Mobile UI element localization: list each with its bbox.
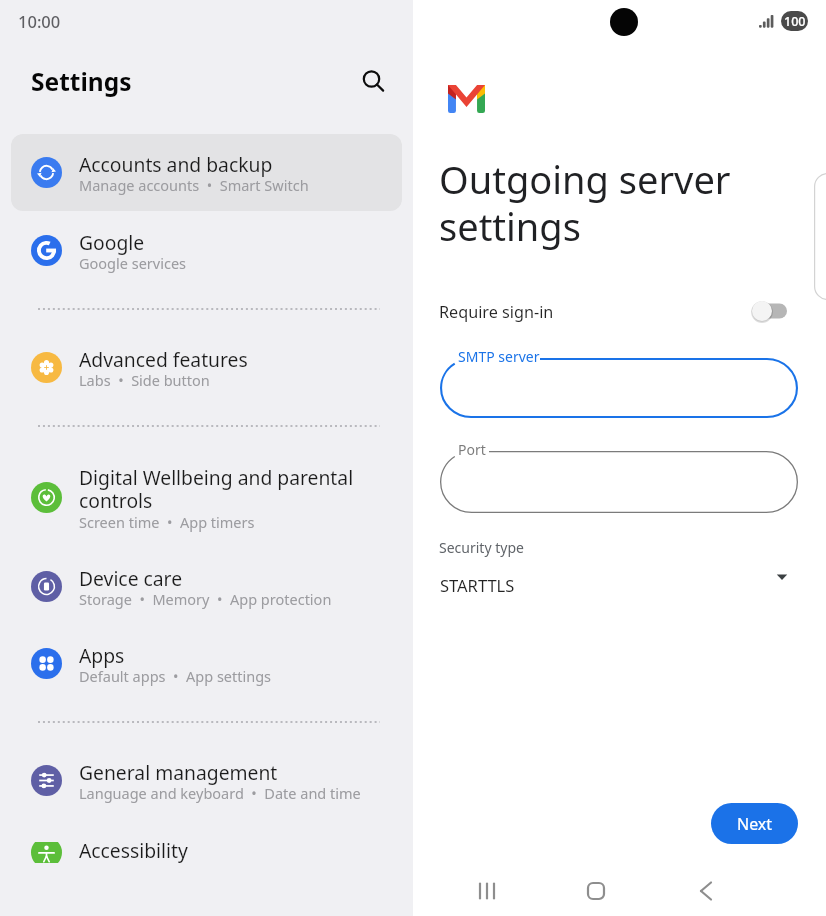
button[interactable]: [11, 223, 402, 279]
staticText: STARTTLS: [440, 574, 515, 596]
staticText: Port: [458, 440, 486, 459]
staticText: Security type: [439, 538, 524, 557]
button[interactable]: [433, 292, 806, 330]
button[interactable]: [745, 297, 799, 325]
button[interactable]: Port: [440, 451, 798, 513]
staticText: Manage accounts • Smart Switch: [79, 175, 309, 195]
button[interactable]: Next: [711, 803, 798, 844]
button[interactable]: [11, 145, 402, 201]
button[interactable]: [11, 559, 402, 615]
staticText: 10:00: [18, 10, 61, 32]
button[interactable]: [11, 636, 402, 692]
button[interactable]: [11, 134, 402, 211]
staticText: General management: [79, 759, 359, 785]
button[interactable]: [433, 566, 806, 602]
staticText: Device care: [79, 565, 359, 591]
staticText: Next: [737, 813, 773, 835]
button[interactable]: Recents: [463, 867, 511, 915]
staticText: Require sign-in: [439, 301, 554, 323]
staticText: Advanced features: [79, 346, 359, 372]
staticText: Screen time • App timers: [79, 512, 255, 532]
staticText: SMTP server: [458, 347, 540, 366]
button[interactable]: [11, 753, 402, 809]
staticText: Accounts and backup: [79, 151, 359, 177]
staticText: Apps: [79, 642, 359, 668]
staticText: Google: [79, 229, 359, 255]
staticText: Outgoing server settings: [439, 153, 731, 252]
staticText: 100: [784, 13, 806, 30]
button[interactable]: Back: [682, 867, 730, 915]
staticText: Settings: [31, 65, 132, 98]
staticText: Digital Wellbeing and parental controls: [79, 464, 359, 514]
button[interactable]: Home: [572, 867, 620, 915]
staticText: Accessibility: [79, 837, 359, 863]
staticText: Language and keyboard • Date and time: [79, 783, 361, 803]
button[interactable]: [11, 470, 402, 526]
button[interactable]: [11, 340, 402, 396]
staticText: Google services: [79, 253, 187, 273]
staticText: Default apps • App settings: [79, 666, 272, 686]
button[interactable]: Search: [355, 63, 388, 96]
button[interactable]: SMTP server: [440, 358, 798, 418]
staticText: Labs • Side button: [79, 370, 210, 390]
button[interactable]: [11, 830, 402, 886]
staticText: Storage • Memory • App protection: [79, 589, 332, 609]
